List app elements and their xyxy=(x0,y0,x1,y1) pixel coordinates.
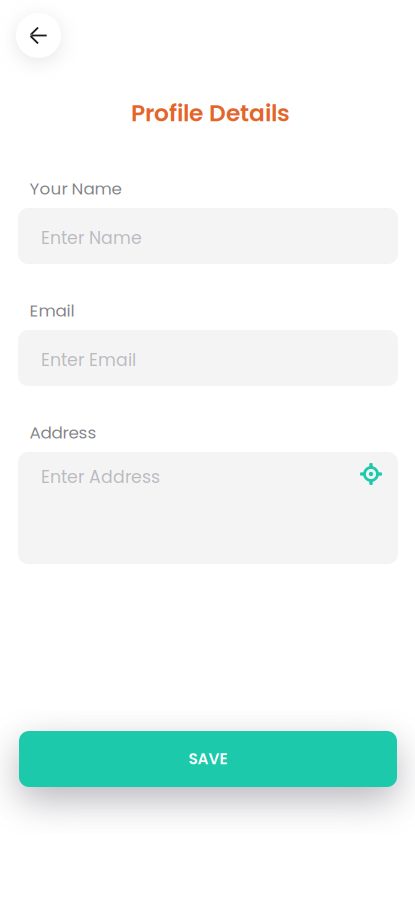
button[interactable]: Enter Email xyxy=(18,330,398,386)
button[interactable]: Enter Address xyxy=(18,452,398,564)
button[interactable]: SAVE xyxy=(19,731,397,787)
staticText: Profile Details xyxy=(131,97,290,129)
staticText: Your Name xyxy=(29,177,121,200)
staticText: Enter Name xyxy=(41,226,142,250)
staticText: Enter Email xyxy=(41,348,136,372)
staticText: Email xyxy=(29,299,74,322)
button[interactable]: Back xyxy=(15,12,61,58)
staticText: Enter Address xyxy=(41,465,160,489)
button[interactable]: Enter Name xyxy=(18,208,398,264)
staticText: Address xyxy=(29,421,96,444)
staticText: SAVE xyxy=(188,748,227,770)
